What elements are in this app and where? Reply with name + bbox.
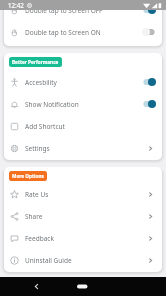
button[interactable]: Rate Us <box>4 183 162 205</box>
staticText: Feedback <box>25 234 54 243</box>
staticText: Add Shortcut <box>25 122 65 131</box>
button[interactable]: Add Shortcut <box>4 115 162 137</box>
staticText: 12:42 <box>8 1 24 9</box>
staticText: Share <box>25 212 43 221</box>
button[interactable]: Double tap to Screen ON <box>4 21 162 43</box>
button[interactable]: Settings <box>4 137 162 159</box>
button[interactable]: Accesbility <box>4 71 162 93</box>
staticText: Accesbility <box>25 78 57 87</box>
staticText: Settings <box>25 144 50 153</box>
button[interactable]: Share <box>4 205 162 227</box>
button[interactable]: Feedback <box>4 227 162 249</box>
staticText: Uninstall Guide <box>25 256 72 265</box>
staticText: Double tap to Screen ON <box>25 28 101 37</box>
button[interactable]: Double tap to Screen OFF <box>4 0 162 21</box>
staticText: Double tap to Screen OFF <box>25 6 103 15</box>
staticText: Better Performance <box>12 59 59 65</box>
other: Navigation bar <box>0 277 166 296</box>
staticText: Show Notification <box>25 100 79 109</box>
staticText: Rate Us <box>25 190 49 199</box>
button[interactable]: Show Notification <box>4 93 162 115</box>
staticText: More Options <box>12 173 44 179</box>
button[interactable]: Uninstall Guide <box>4 249 162 271</box>
